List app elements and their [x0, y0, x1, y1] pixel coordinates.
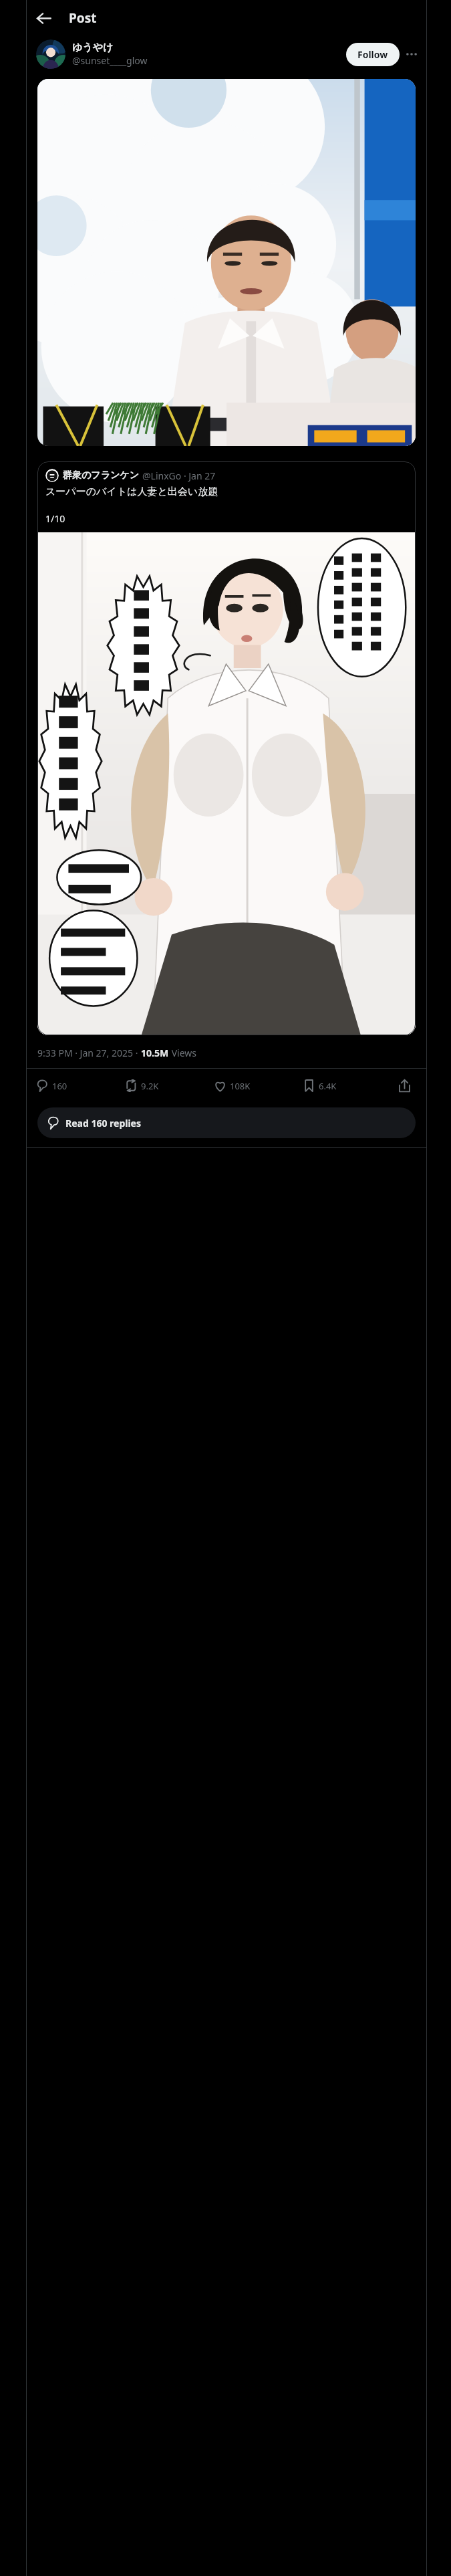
staticText: 1/10	[45, 512, 65, 525]
button[interactable]: ゆうやけ	[27, 36, 426, 72]
button[interactable]: Follow	[346, 43, 400, 66]
button[interactable]: Repost	[125, 1079, 214, 1092]
staticText: Views	[169, 1047, 196, 1059]
button[interactable]: Read 160 replies	[37, 1107, 416, 1138]
button[interactable]: 群衆のフランケン	[37, 461, 416, 1035]
staticText: Follow	[357, 48, 388, 61]
button[interactable]: Photo	[37, 79, 416, 446]
staticText: 6.4K	[319, 1080, 337, 1092]
staticText: スーパーのバイトは人妻と出会い放題	[45, 486, 218, 498]
staticText: Post	[69, 9, 97, 27]
staticText: @sunset____glow	[72, 54, 148, 67]
button[interactable]: Back	[28, 3, 59, 33]
staticText: 160	[52, 1080, 67, 1092]
staticText: 群衆のフランケン	[63, 469, 139, 481]
staticText: 10.5M	[141, 1047, 169, 1059]
button[interactable]: More	[400, 42, 424, 66]
button[interactable]: Reply	[36, 1079, 125, 1092]
button[interactable]: Like	[214, 1079, 303, 1092]
staticText: @LinxGo · Jan 27	[142, 469, 216, 482]
staticText: Read 160 replies	[65, 1117, 142, 1130]
staticText: 108K	[230, 1080, 251, 1092]
staticText: 9:33 PM · Jan 27, 2025 ·	[37, 1047, 141, 1059]
button[interactable]: Bookmark	[303, 1079, 392, 1092]
staticText: ゆうやけ	[72, 41, 114, 54]
staticText: 9.2K	[141, 1080, 159, 1092]
button[interactable]: Share	[392, 1073, 417, 1098]
